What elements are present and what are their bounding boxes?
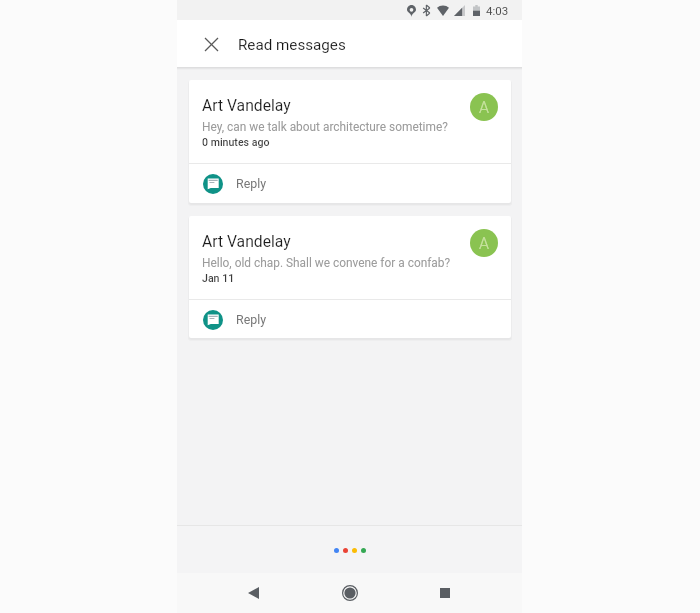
staticText: Hello, old chap. Shall we convene for a …: [202, 256, 451, 270]
button[interactable]: Reply: [189, 164, 511, 203]
button[interactable]: Google Assistant: [334, 548, 366, 553]
staticText: A: [479, 98, 489, 117]
button[interactable]: Art Vandelay: [189, 80, 511, 163]
staticText: Art Vandelay: [202, 232, 291, 250]
button[interactable]: Reply: [189, 300, 511, 338]
staticText: Read messages: [238, 36, 346, 54]
button[interactable]: Art Vandelay: [189, 216, 511, 299]
button[interactable]: Home: [336, 579, 364, 607]
button[interactable]: Back: [239, 579, 267, 607]
button[interactable]: Close: [197, 30, 225, 58]
button[interactable]: Recents: [431, 579, 459, 607]
staticText: Hey, can we talk about architecture some…: [202, 120, 448, 134]
staticText: Jan 11: [202, 272, 235, 284]
staticText: 0 minutes ago: [202, 136, 270, 148]
staticText: A: [479, 234, 489, 253]
staticText: Reply: [236, 176, 267, 191]
staticText: Reply: [236, 312, 267, 327]
staticText: 4:03: [486, 4, 509, 17]
staticText: Art Vandelay: [202, 96, 291, 114]
